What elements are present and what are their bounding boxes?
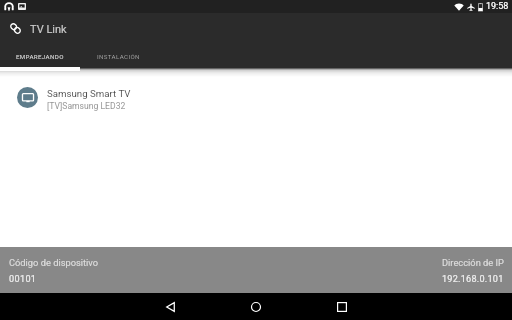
- button[interactable]: TV Link: [9, 22, 22, 35]
- button[interactable]: INSTALACIÓN: [80, 43, 157, 68]
- staticText: [TV]Samsung LED32: [47, 101, 126, 111]
- button[interactable]: Recent apps: [329, 294, 355, 320]
- staticText: Samsung Smart TV: [47, 88, 131, 99]
- button[interactable]: Back: [157, 294, 183, 320]
- staticText: 192.168.0.101: [442, 274, 504, 285]
- button[interactable]: Samsung Smart TV: [0, 83, 512, 111]
- staticText: TV Link: [30, 23, 67, 36]
- button[interactable]: Home: [243, 294, 269, 320]
- staticText: INSTALACIÓN: [97, 53, 140, 60]
- staticText: Dirección de IP: [442, 257, 504, 268]
- staticText: Código de dispositivo: [9, 257, 99, 268]
- staticText: 19:58: [486, 1, 509, 12]
- button[interactable]: EMPAREJANDO: [0, 43, 80, 68]
- staticText: 00101: [9, 274, 37, 285]
- staticText: EMPAREJANDO: [16, 53, 64, 60]
